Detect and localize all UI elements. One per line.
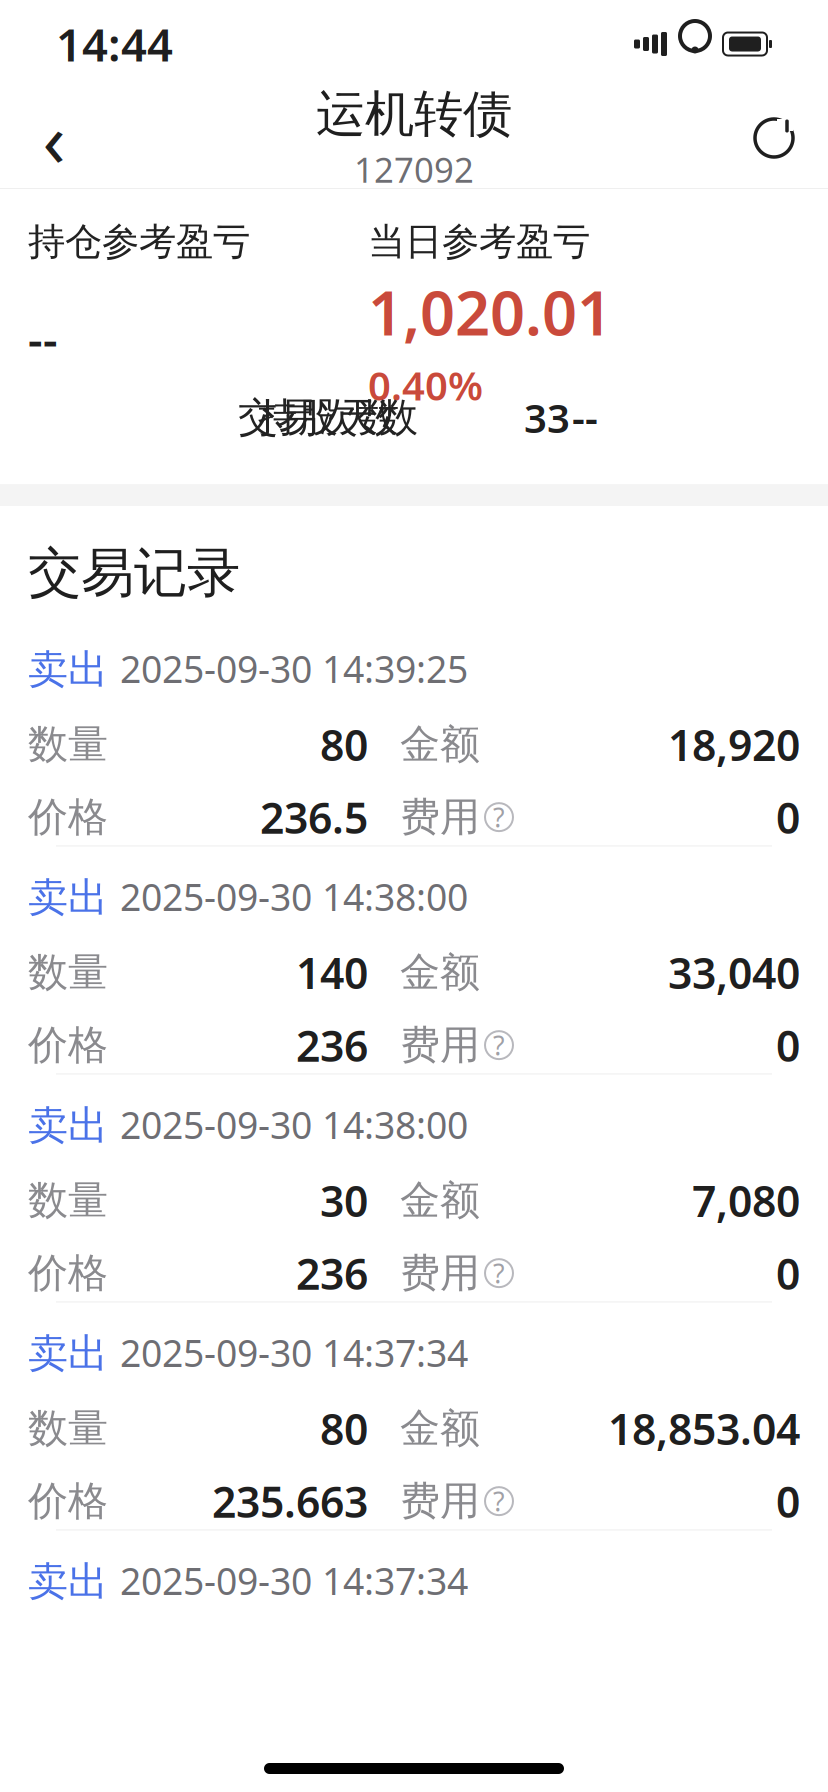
staticText: 运机转债 (316, 84, 512, 144)
button[interactable]: 卖出 (0, 1300, 828, 1528)
staticText: 数量 (28, 720, 108, 769)
staticText: 0 (776, 1473, 800, 1529)
staticText: 18,920 (668, 716, 800, 773)
staticText: 卖出 (28, 1557, 108, 1606)
staticText: 80 (320, 1400, 368, 1457)
staticText: 0 (776, 789, 800, 845)
staticText: ? (493, 799, 505, 835)
staticText: ‹ (42, 88, 65, 188)
staticText: 价格 (28, 793, 108, 842)
staticText: 14:44 (56, 14, 173, 74)
button[interactable]: 卖出 (0, 1528, 828, 1608)
staticText: 金额 (400, 1404, 480, 1453)
staticText: ? (493, 1483, 505, 1519)
staticText: 费用 (400, 1021, 480, 1070)
staticText: 费用 (400, 1249, 480, 1298)
staticText: ? (493, 1027, 505, 1063)
button[interactable]: 卖出 (0, 1072, 828, 1300)
staticText: 2025-09-30 14:39:25 (120, 644, 468, 693)
staticText: 236.5 (260, 789, 368, 845)
staticText: 0.40% (368, 358, 483, 411)
staticText: 持股天数 (258, 393, 418, 442)
staticText: 卖出 (28, 1101, 108, 1150)
staticText: 0 (776, 1245, 800, 1301)
staticText: 费用 (400, 1477, 480, 1526)
staticText: 127092 (354, 146, 474, 192)
button[interactable]: 卖出 (0, 616, 828, 844)
staticText: 价格 (28, 1477, 108, 1526)
staticText: 236 (296, 1017, 368, 1073)
staticText: 2025-09-30 14:38:00 (120, 1100, 468, 1149)
button[interactable]: 卖出 (0, 844, 828, 1072)
staticText: 2025-09-30 14:37:34 (120, 1328, 468, 1377)
staticText: 33 (524, 391, 570, 444)
staticText: 数量 (28, 1404, 108, 1453)
button[interactable]: Refresh (730, 94, 818, 182)
staticText: 235.663 (212, 1473, 368, 1529)
staticText: 持仓参考盈亏 (28, 219, 250, 265)
staticText: 2025-09-30 14:38:00 (120, 872, 468, 921)
staticText: 价格 (28, 1021, 108, 1070)
staticText: 交易记录 (28, 540, 240, 606)
staticText: 卖出 (28, 645, 108, 694)
staticText: 7,080 (692, 1172, 800, 1229)
staticText: 140 (296, 944, 368, 1001)
staticText: -- (572, 391, 598, 444)
staticText: 交易次数 (238, 393, 398, 442)
staticText: 236 (296, 1245, 368, 1301)
button[interactable]: Back (10, 94, 98, 182)
staticText: 1,020.01 (368, 271, 612, 352)
staticText: 卖出 (28, 873, 108, 922)
staticText: -- (28, 309, 58, 369)
staticText: 2025-09-30 14:37:34 (120, 1556, 468, 1605)
staticText: 金额 (400, 948, 480, 997)
staticText: 30 (320, 1172, 368, 1229)
staticText: ? (493, 1255, 505, 1291)
staticText: 数量 (28, 1176, 108, 1225)
staticText: 0 (776, 1017, 800, 1073)
staticText: 80 (320, 716, 368, 773)
staticText: 当日参考盈亏 (368, 219, 590, 265)
staticText: 卖出 (28, 1329, 108, 1378)
staticText: 18,853.04 (608, 1400, 800, 1457)
staticText: 数量 (28, 948, 108, 997)
staticText: 价格 (28, 1249, 108, 1298)
staticText: 金额 (400, 1176, 480, 1225)
staticText: 费用 (400, 793, 480, 842)
staticText: 金额 (400, 720, 480, 769)
staticText: 33,040 (668, 944, 800, 1001)
